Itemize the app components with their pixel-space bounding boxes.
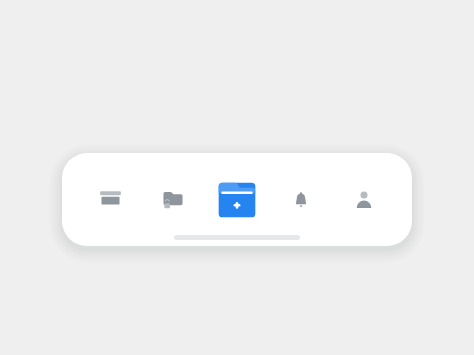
button[interactable]: New folder (214, 177, 260, 223)
button[interactable]: Account (342, 178, 386, 222)
button[interactable]: Notifications (279, 178, 323, 222)
button[interactable]: Locked folder (151, 178, 195, 222)
button[interactable]: Archive (88, 178, 132, 222)
